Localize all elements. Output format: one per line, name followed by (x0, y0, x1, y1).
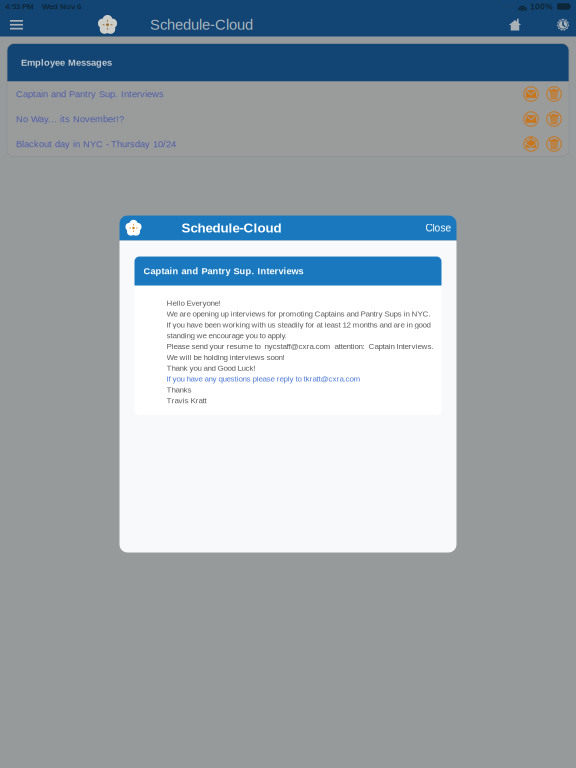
staticText: Captain and Pantry Sup. Interviews (16, 89, 164, 99)
staticText: We are opening up interviews for promoti… (166, 309, 430, 318)
button[interactable]: Open message (519, 81, 542, 106)
button[interactable]: Delete message (542, 131, 565, 156)
staticText: Travis Kratt (166, 396, 206, 405)
staticText: If you have been working with us steadil… (166, 320, 430, 329)
staticText: Thank you and Good Luck! (166, 363, 255, 372)
staticText: Wed Nov 6 (42, 2, 81, 11)
staticText: Thanks (166, 385, 191, 394)
staticText: Close (425, 222, 451, 234)
button[interactable]: Delete message (542, 81, 565, 106)
button[interactable]: Home (502, 13, 528, 36)
button[interactable]: Open message (519, 131, 542, 156)
button[interactable]: Menu (2, 13, 31, 36)
button[interactable]: Delete message (542, 106, 565, 131)
staticText: Blackout day in NYC - Thursday 10/24 (16, 139, 176, 149)
staticText: Hello Everyone! (166, 298, 220, 307)
staticText: 4:53 PM (5, 2, 34, 11)
staticText: Employee Messages (21, 57, 112, 68)
staticText: No Way... its November!? (16, 114, 124, 124)
button[interactable]: Captain and Pantry Sup. Interviews (7, 81, 569, 106)
button[interactable]: No Way... its November!? (7, 106, 569, 131)
staticText: standing we encourage you to apply. (166, 331, 286, 340)
button[interactable]: Open message (519, 106, 542, 131)
staticText: 100% (530, 2, 553, 11)
staticText: Schedule-Cloud (181, 221, 281, 235)
staticText: Please send your resume to nycstaff@cxra… (166, 342, 433, 351)
button[interactable]: Blackout day in NYC - Thursday 10/24 (7, 131, 569, 156)
staticText: If you have any questions please reply t… (166, 374, 360, 383)
staticText: Schedule-Cloud (150, 17, 253, 33)
button[interactable]: Settings (550, 13, 576, 36)
button[interactable]: Close (417, 215, 456, 240)
staticText: Captain and Pantry Sup. Interviews (143, 266, 303, 276)
staticText: We will be holding interviews soon! (166, 353, 284, 362)
